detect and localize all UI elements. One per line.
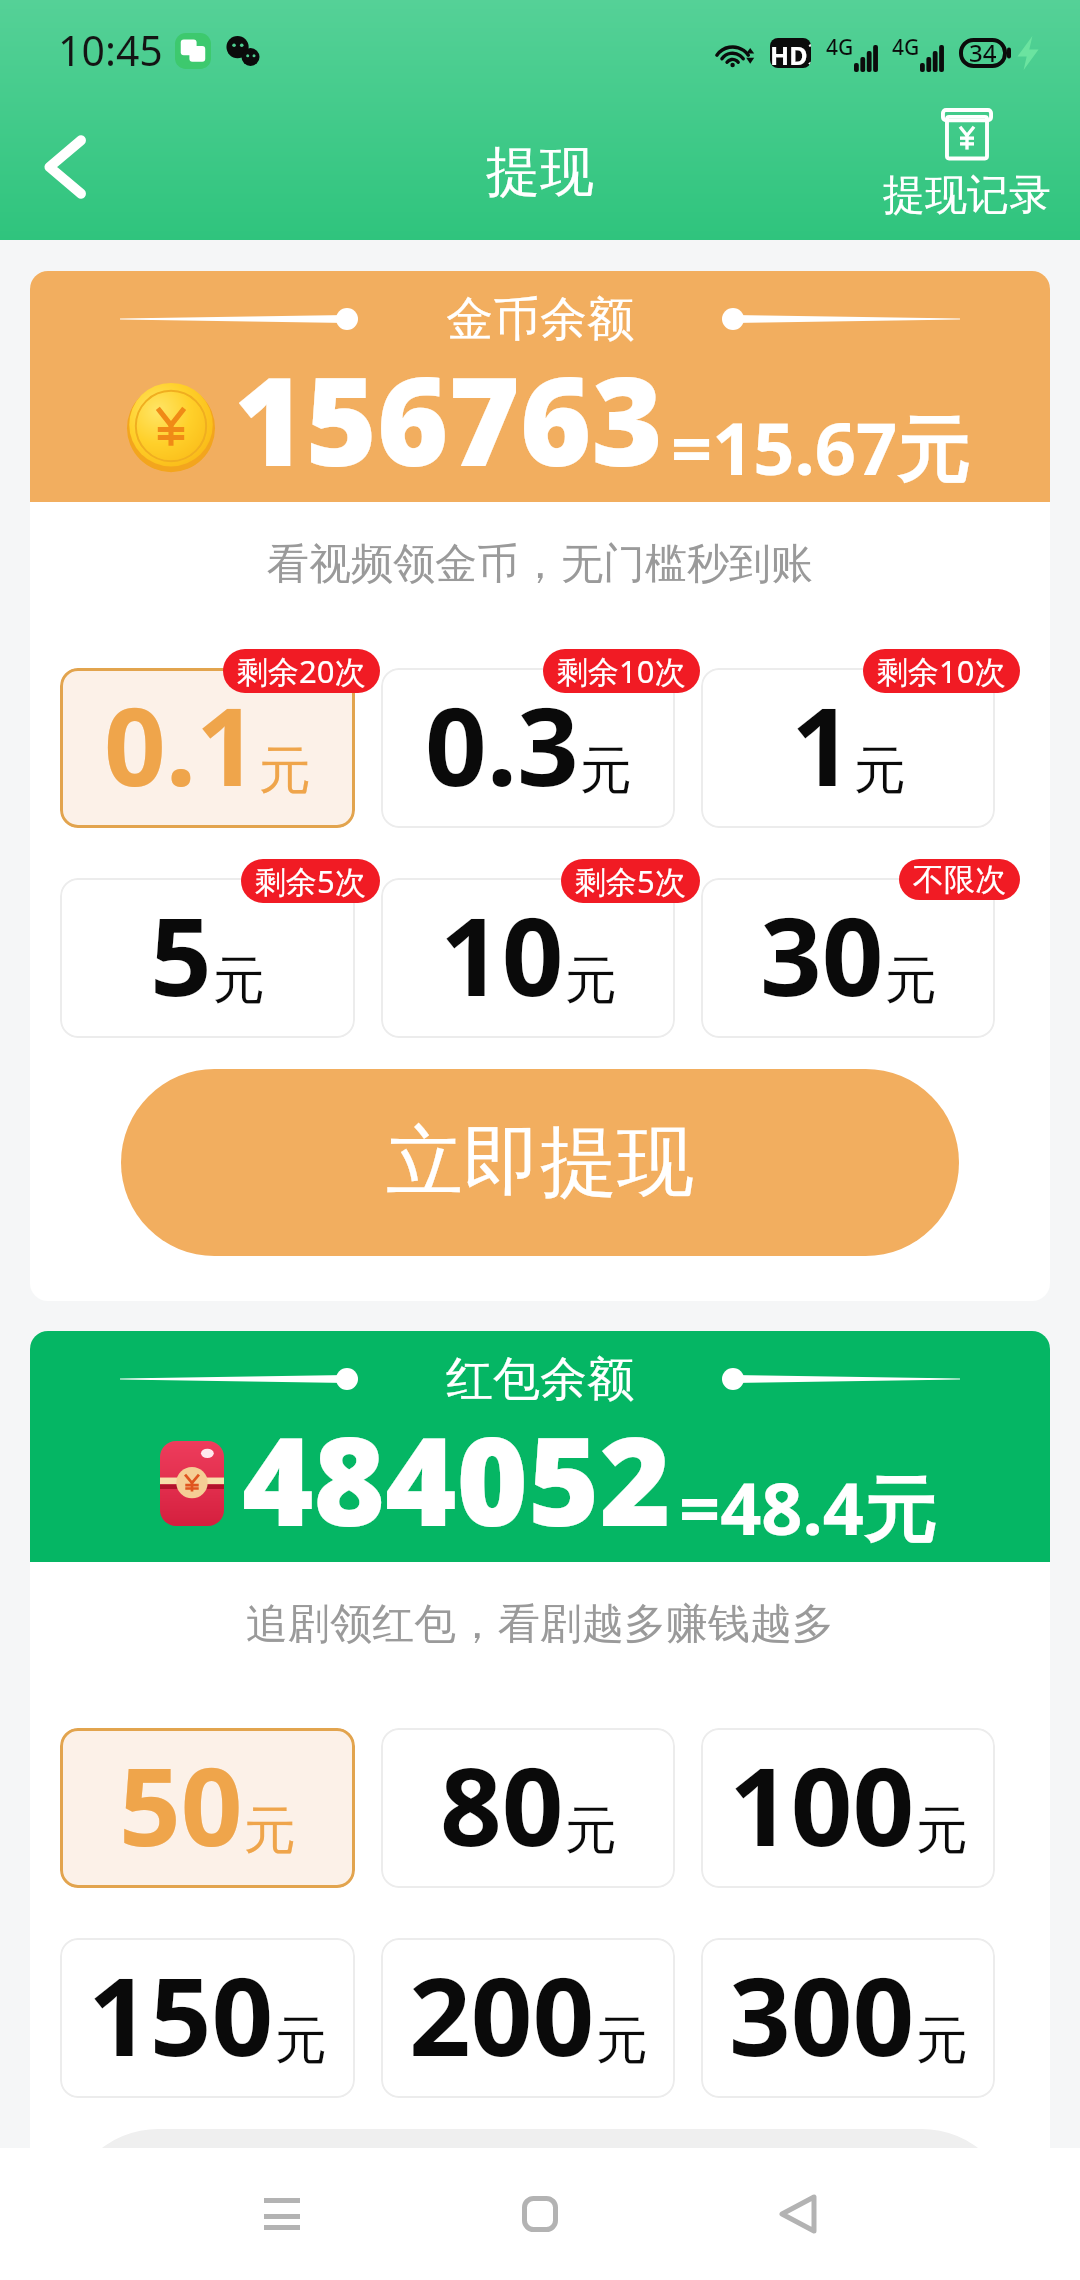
staticText: 200 bbox=[409, 1941, 595, 2088]
staticText: 剩余20次 bbox=[237, 650, 366, 692]
staticText: 金币余额 bbox=[446, 290, 634, 349]
staticText: 元 bbox=[275, 2008, 327, 2074]
staticText: 剩余5次 bbox=[255, 860, 366, 902]
button[interactable]: 提现记录 bbox=[883, 108, 1051, 222]
staticText: 立即提现 bbox=[386, 1114, 694, 1211]
staticText: 2 bbox=[808, 57, 811, 68]
staticText: 剩余5次 bbox=[575, 860, 686, 902]
staticText: 剩余10次 bbox=[557, 650, 686, 692]
staticText: 1 bbox=[808, 38, 811, 57]
staticText: 元 bbox=[854, 738, 906, 804]
staticText: 元 bbox=[259, 738, 311, 804]
button[interactable]: 100 bbox=[701, 1728, 995, 1888]
staticText: 30 bbox=[760, 881, 884, 1028]
staticText: 484052 bbox=[242, 1396, 671, 1562]
staticText: 剩余10次 bbox=[877, 650, 1006, 692]
staticText: 元 bbox=[565, 948, 617, 1014]
button[interactable]: Back bbox=[10, 104, 120, 240]
staticText: 元 bbox=[580, 738, 632, 804]
staticText: =48.4元 bbox=[679, 1458, 936, 1556]
staticText: 5 bbox=[150, 881, 212, 1028]
button[interactable]: 150 bbox=[60, 1938, 355, 2098]
staticText: 100 bbox=[729, 1731, 915, 1878]
staticText: 元 bbox=[596, 2008, 648, 2074]
button[interactable]: 10 bbox=[381, 878, 675, 1038]
staticText: 300 bbox=[729, 1941, 915, 2088]
staticText: 不限次 bbox=[913, 860, 1006, 899]
button[interactable]: 50 bbox=[60, 1728, 355, 1888]
button[interactable]: 立即提现 bbox=[65, 2129, 1015, 2148]
staticText: 提现 bbox=[486, 138, 594, 206]
button[interactable]: 1 bbox=[701, 668, 995, 828]
staticText: HD bbox=[770, 38, 808, 68]
button[interactable]: 30 bbox=[701, 878, 995, 1038]
button[interactable]: 200 bbox=[381, 1938, 675, 2098]
button[interactable]: 5 bbox=[60, 878, 355, 1038]
staticText: 10 bbox=[440, 881, 564, 1028]
staticText: 10:45 bbox=[58, 22, 163, 78]
staticText: 元 bbox=[244, 1798, 296, 1864]
staticText: 0.3 bbox=[425, 671, 579, 818]
button[interactable]: Recent apps bbox=[222, 2154, 342, 2274]
button[interactable]: 0.1 bbox=[60, 668, 355, 828]
staticText: 元 bbox=[213, 948, 265, 1014]
staticText: 元 bbox=[885, 948, 937, 1014]
staticText: 0.1 bbox=[104, 671, 258, 818]
button[interactable]: Home bbox=[480, 2154, 600, 2274]
button[interactable]: 80 bbox=[381, 1728, 675, 1888]
staticText: 元 bbox=[565, 1798, 617, 1864]
staticText: 追剧领红包，看剧越多赚钱越多 bbox=[30, 1598, 1050, 1651]
staticText: 80 bbox=[440, 1731, 564, 1878]
staticText: 1 bbox=[791, 671, 853, 818]
button[interactable]: 300 bbox=[701, 1938, 995, 2098]
button[interactable]: Back bbox=[738, 2154, 858, 2274]
staticText: 提现记录 bbox=[883, 169, 1051, 222]
staticText: =15.67元 bbox=[671, 398, 970, 496]
staticText: 红包余额 bbox=[446, 1350, 634, 1409]
button[interactable]: 0.3 bbox=[381, 668, 675, 828]
staticText: 4G bbox=[892, 33, 920, 62]
staticText: 150 bbox=[88, 1941, 274, 2088]
button[interactable]: 立即提现 bbox=[121, 1069, 959, 1256]
staticText: 156763 bbox=[234, 336, 663, 502]
staticText: 4G bbox=[826, 33, 854, 62]
staticText: 元 bbox=[916, 1798, 968, 1864]
staticText: 元 bbox=[916, 2008, 968, 2074]
staticText: 50 bbox=[119, 1731, 243, 1878]
staticText: 34 bbox=[969, 36, 997, 69]
staticText: 看视频领金币，无门槛秒到账 bbox=[30, 538, 1050, 591]
